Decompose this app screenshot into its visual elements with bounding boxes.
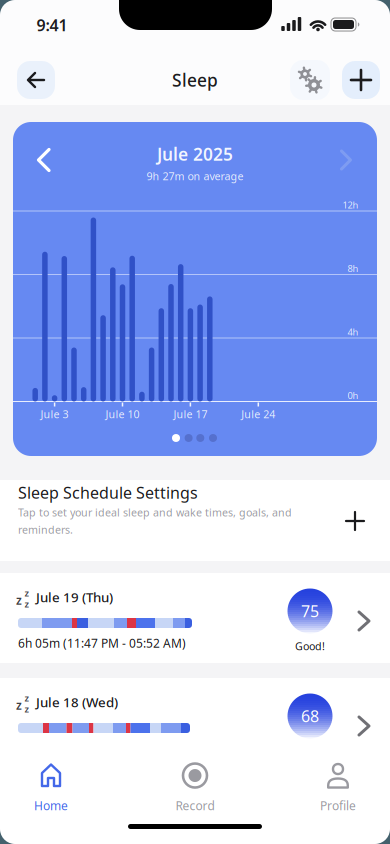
staticText: Jule 24 [241, 407, 275, 421]
staticText: Home [34, 797, 68, 813]
staticText: Record [175, 797, 214, 813]
staticText: Jule 19 (Thu) [36, 588, 113, 606]
staticText: Jule 18 (Wed) [36, 693, 118, 711]
button[interactable]: Profile [298, 760, 378, 816]
staticText: Jule 17 [173, 407, 207, 421]
button[interactable]: Settings [290, 60, 330, 100]
staticText: z [16, 592, 22, 608]
button[interactable]: Back [17, 61, 55, 99]
staticText: Profile [320, 797, 356, 813]
staticText: Jule 3 [41, 407, 69, 421]
staticText: z [24, 587, 29, 599]
staticText: 75 [301, 600, 319, 622]
staticText: 8h [347, 262, 358, 275]
staticText: 9h 27m on average [146, 169, 243, 183]
button[interactable]: z [0, 678, 390, 768]
button[interactable]: Add [342, 61, 380, 99]
staticText: 0h [347, 389, 358, 402]
staticText: Tap to set your ideal sleep and wake tim… [18, 505, 292, 537]
staticText: Sleep Schedule Settings [18, 482, 198, 503]
button[interactable]: Home [11, 760, 91, 816]
staticText: z [24, 692, 29, 704]
staticText: Good! [295, 639, 325, 653]
staticText: Jule 10 [105, 407, 139, 421]
button[interactable]: Previous month [29, 145, 59, 175]
button[interactable]: Next month [331, 145, 361, 175]
staticText: z [16, 697, 22, 713]
staticText: 9:41 [36, 14, 67, 36]
staticText: 68 [301, 705, 319, 727]
staticText: 12h [342, 199, 358, 211]
staticText: Jule 2025 [157, 142, 233, 165]
staticText: Sleep [172, 68, 218, 91]
staticText: z [24, 703, 29, 715]
button[interactable]: z [0, 573, 390, 663]
staticText: 4h [347, 326, 358, 338]
button[interactable]: Record [155, 760, 235, 816]
staticText: z [24, 598, 29, 610]
staticText: 6h 05m (11:47 PM - 05:52 AM) [18, 635, 186, 651]
button[interactable]: Sleep Schedule Settings [0, 480, 390, 561]
